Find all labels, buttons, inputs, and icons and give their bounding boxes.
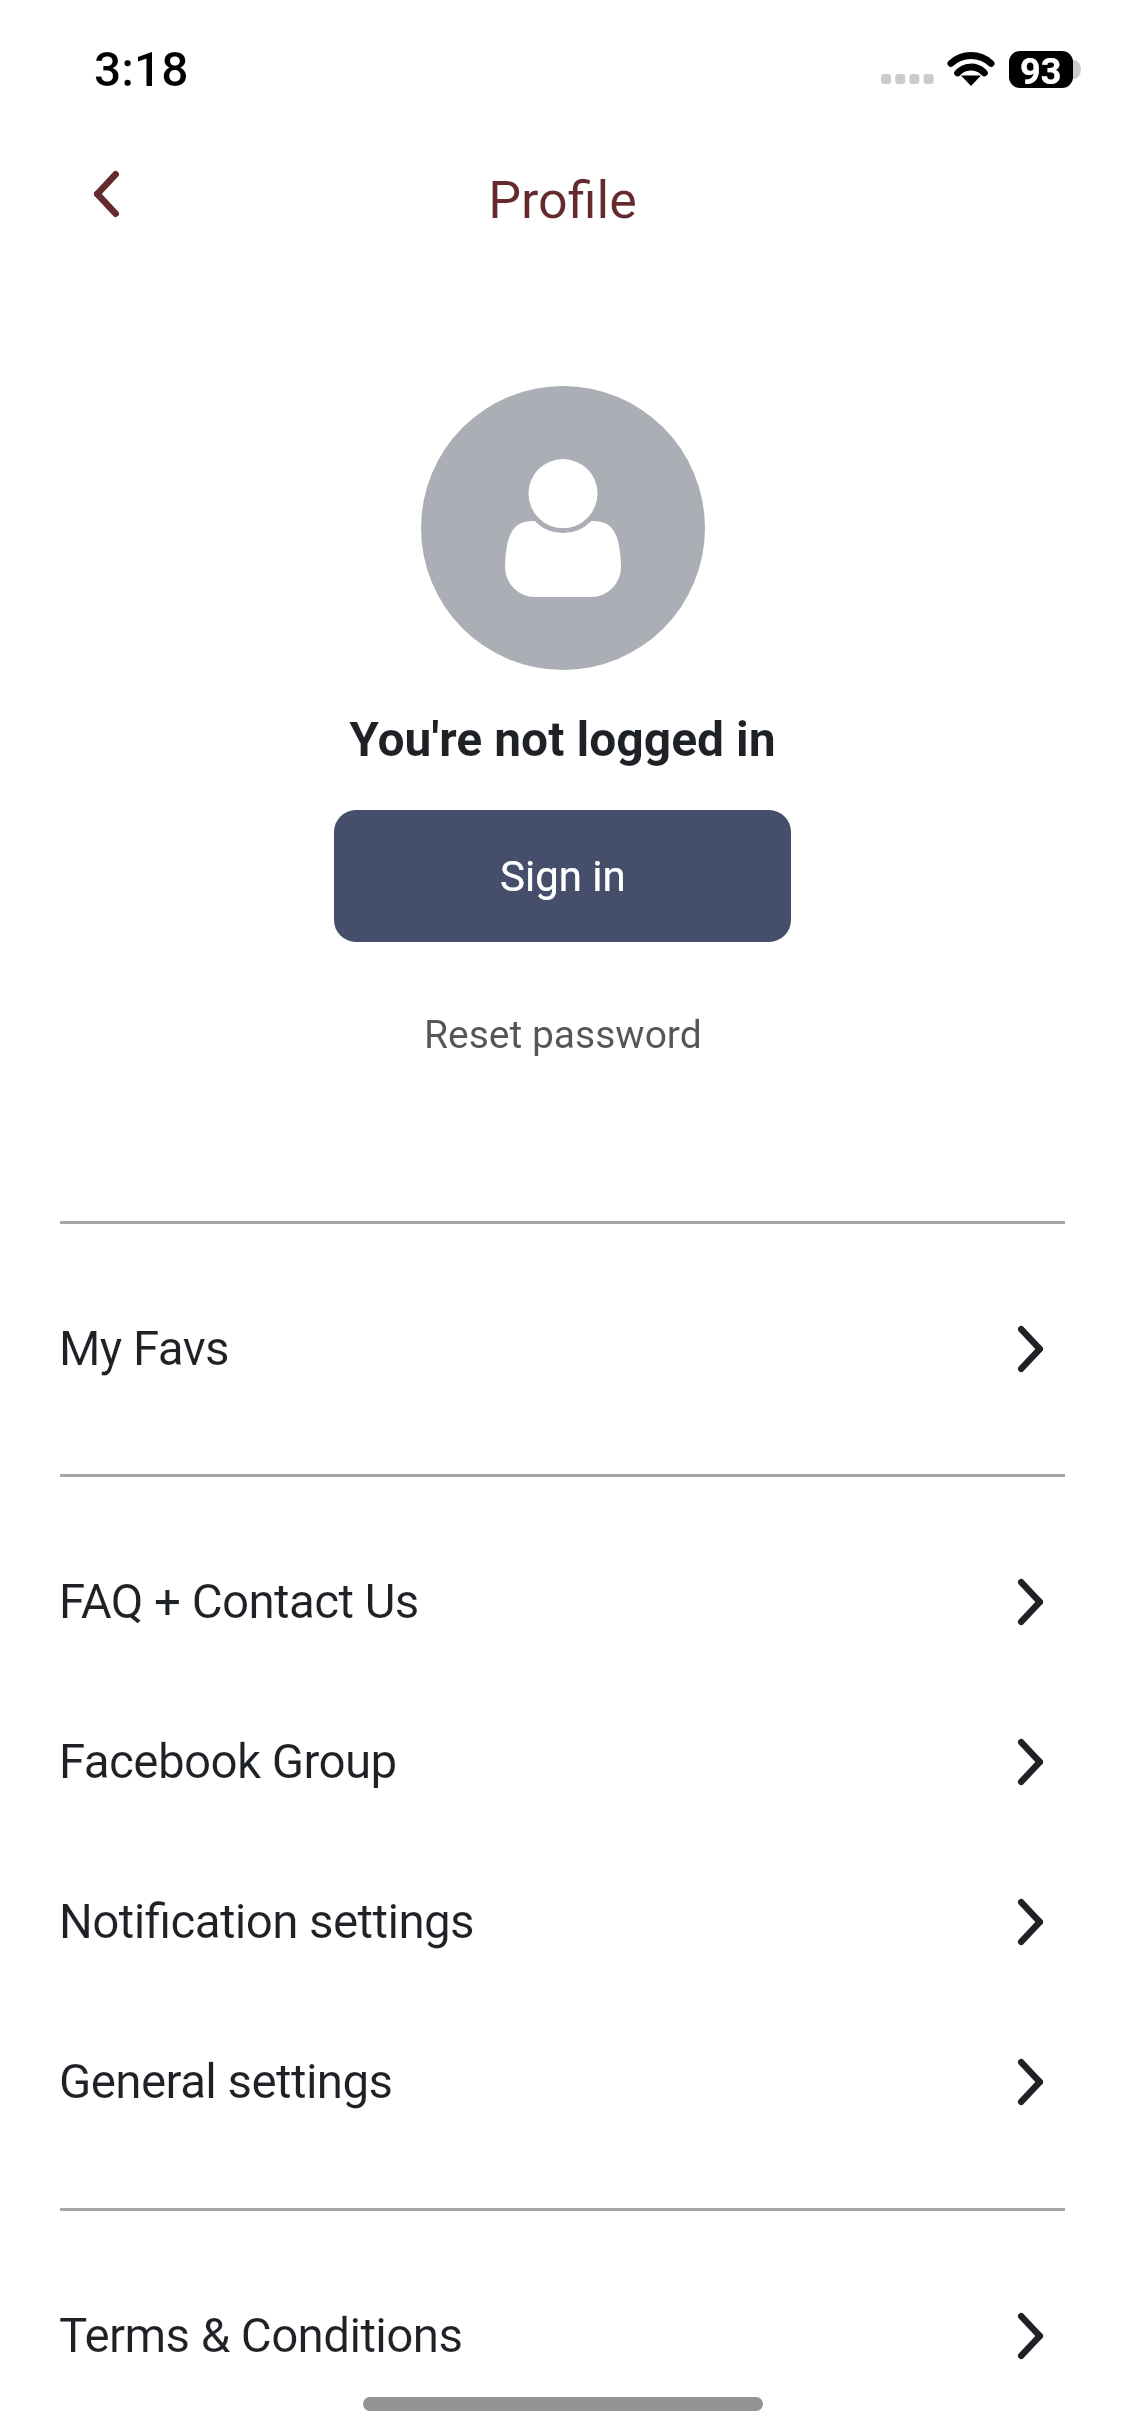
- staticText: 3:18: [94, 41, 189, 97]
- button[interactable]: Notification settings: [0, 1842, 1125, 2002]
- staticText: Profile: [0, 170, 1125, 231]
- staticText: My Favs: [59, 1321, 230, 1377]
- button[interactable]: Sign in: [334, 810, 791, 942]
- staticText: Reset password: [424, 1012, 702, 1058]
- button[interactable]: General settings: [0, 2002, 1125, 2162]
- staticText: 93: [1020, 51, 1062, 88]
- staticText: FAQ + Contact Us: [59, 1574, 419, 1630]
- staticText: Facebook Group: [59, 1734, 397, 1790]
- staticText: You're not logged in: [0, 711, 1125, 767]
- staticText: Terms & Conditions: [59, 2308, 463, 2364]
- button[interactable]: FAQ + Contact Us: [0, 1522, 1125, 1682]
- staticText: Sign in: [500, 852, 626, 901]
- button[interactable]: My Favs: [0, 1269, 1125, 1429]
- staticText: Notification settings: [59, 1894, 475, 1950]
- button[interactable]: Reset password: [390, 995, 735, 1075]
- button[interactable]: Terms & Conditions: [0, 2256, 1125, 2416]
- button[interactable]: Facebook Group: [0, 1682, 1125, 1842]
- staticText: General settings: [59, 2054, 393, 2110]
- button[interactable]: Back: [58, 146, 154, 242]
